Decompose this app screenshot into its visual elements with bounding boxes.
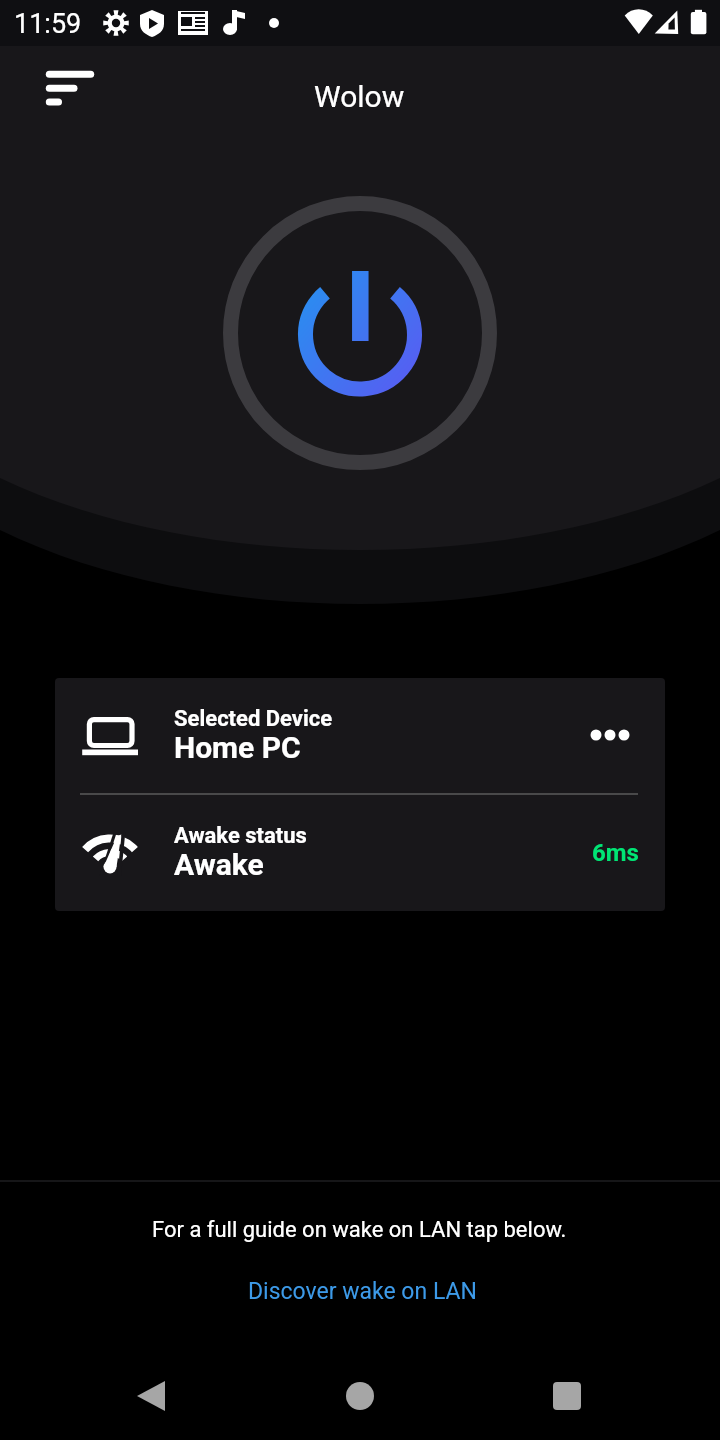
button[interactable]: Power on device bbox=[222, 196, 496, 470]
button[interactable] bbox=[55, 795, 665, 911]
button[interactable]: Recents bbox=[527, 1366, 607, 1430]
button[interactable]: Home bbox=[320, 1366, 400, 1430]
button[interactable]: More options bbox=[576, 710, 646, 760]
staticText: Selected Device bbox=[174, 706, 333, 732]
staticText: Wolow bbox=[314, 79, 405, 114]
button[interactable]: Back bbox=[110, 1366, 190, 1430]
button[interactable] bbox=[240, 1274, 480, 1314]
staticText: Awake status bbox=[174, 823, 307, 849]
staticText: Awake bbox=[174, 847, 264, 882]
staticText: Discover wake on LAN bbox=[248, 1278, 477, 1305]
staticText: For a full guide on wake on LAN tap belo… bbox=[152, 1217, 567, 1243]
button[interactable] bbox=[55, 678, 665, 794]
staticText: 6ms bbox=[592, 839, 639, 867]
staticText: Home PC bbox=[174, 730, 301, 765]
button[interactable]: Sort menu bbox=[28, 62, 92, 120]
staticText: 11:59 bbox=[14, 8, 82, 40]
